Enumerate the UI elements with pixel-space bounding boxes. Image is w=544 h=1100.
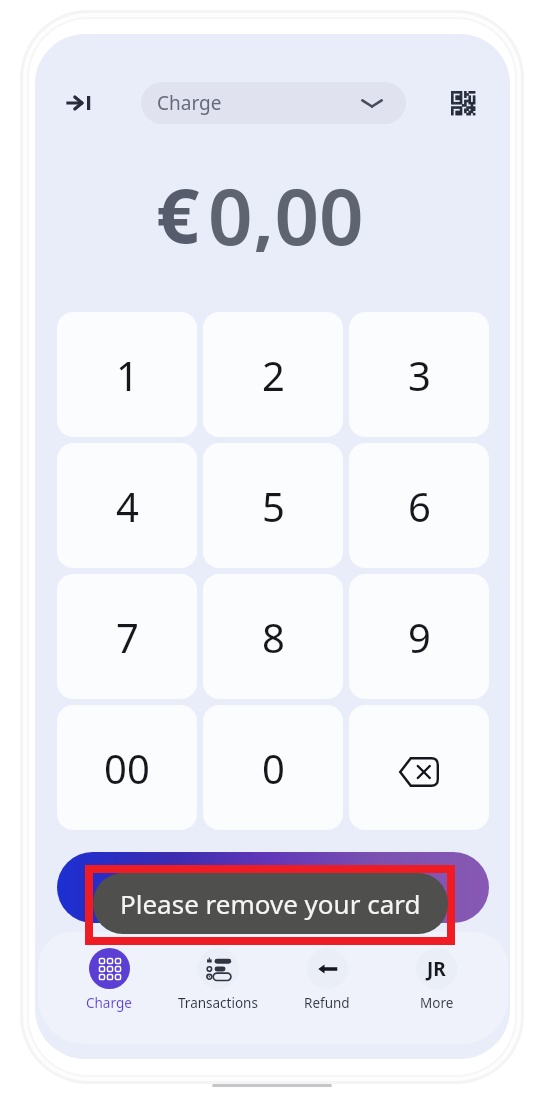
button[interactable]: 4 [57,443,197,568]
button[interactable]: JR [381,939,491,1044]
button[interactable]: 5 [203,443,343,568]
button[interactable]: Refund [272,939,382,1044]
button[interactable]: Charge [141,82,406,124]
staticText: 3 [408,348,431,402]
other: Backspace [399,757,439,787]
button[interactable]: 1 [57,312,197,437]
staticText: 9 [408,610,431,664]
staticText: 1 [116,348,139,402]
button[interactable]: Log out [57,81,101,125]
staticText: More [420,994,454,1012]
staticText: 5 [262,479,285,533]
button[interactable]: 7 [57,574,197,699]
button[interactable]: 2 [203,312,343,437]
button[interactable]: 3 [349,312,489,437]
staticText: 7 [116,610,139,664]
staticText: 0 [262,741,285,795]
button[interactable] [57,852,489,923]
button[interactable]: 0 [203,705,343,830]
button[interactable]: Backspace [349,705,489,830]
button[interactable]: 8 [203,574,343,699]
button[interactable]: 9 [349,574,489,699]
staticText: Refund [304,994,350,1012]
button[interactable]: Transactions [163,939,273,1044]
staticText: Charge [157,90,222,116]
staticText: 0,00 [208,162,364,252]
staticText: 4 [116,479,139,533]
staticText: 6 [408,479,431,533]
staticText: 00 [104,741,150,795]
button[interactable]: 00 [57,705,197,830]
button[interactable]: Charge [54,939,164,1044]
staticText: Charge [86,994,132,1012]
button[interactable]: 6 [349,443,489,568]
staticText: JR [427,956,446,982]
staticText: 2 [262,348,285,402]
staticText: € [156,162,200,252]
staticText: Please remove your card [120,886,421,921]
button[interactable]: Scan QR code [441,81,485,125]
staticText: Transactions [178,994,258,1012]
staticText: 8 [262,610,285,664]
